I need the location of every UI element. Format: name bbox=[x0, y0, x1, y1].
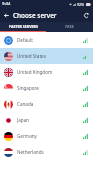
button[interactable]: United States bbox=[0, 48, 93, 64]
staticText: Default bbox=[17, 37, 83, 43]
staticText: 92% bbox=[77, 2, 85, 7]
staticText: Choose server bbox=[13, 11, 57, 20]
staticText: Singapore bbox=[17, 85, 83, 91]
staticText: FASTER SERVERS bbox=[9, 24, 38, 29]
staticText: United Kingdom bbox=[17, 69, 83, 75]
button[interactable]: Germany bbox=[0, 128, 93, 144]
button[interactable]: Singapore bbox=[0, 80, 93, 96]
staticText: Canada bbox=[17, 101, 83, 107]
button[interactable]: Canada bbox=[0, 96, 93, 112]
staticText: United States bbox=[17, 53, 83, 59]
button[interactable]: Netherlands bbox=[0, 144, 93, 160]
staticText: Germany bbox=[17, 133, 83, 139]
button[interactable]: FREE bbox=[46, 22, 93, 31]
button[interactable]: United Kingdom bbox=[0, 64, 93, 80]
button[interactable]: Back bbox=[1, 10, 12, 21]
staticText: Japan bbox=[17, 117, 83, 123]
button[interactable]: Default bbox=[0, 32, 93, 48]
staticText: FREE bbox=[65, 24, 74, 29]
button[interactable]: FASTER SERVERS bbox=[0, 22, 46, 31]
button[interactable]: Refresh bbox=[81, 10, 92, 21]
staticText: 9:44 bbox=[2, 1, 11, 7]
staticText: Netherlands bbox=[17, 149, 83, 155]
button[interactable]: Japan bbox=[0, 112, 93, 128]
